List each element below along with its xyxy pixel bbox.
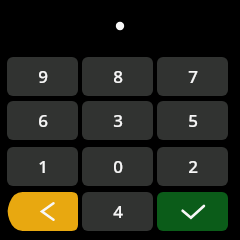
staticText: 5 <box>188 109 198 132</box>
button[interactable]: 5 <box>157 101 228 140</box>
button[interactable]: 3 <box>82 101 153 140</box>
button[interactable]: 6 <box>7 101 78 140</box>
button[interactable]: 1 <box>7 147 78 186</box>
staticText: 0 <box>113 155 123 178</box>
staticText: 9 <box>38 65 48 88</box>
button[interactable]: 2 <box>157 147 228 186</box>
staticText: 6 <box>38 109 48 132</box>
button[interactable]: Confirm <box>157 192 228 231</box>
button[interactable]: 7 <box>157 57 228 96</box>
button[interactable]: 8 <box>82 57 153 96</box>
staticText: 3 <box>113 109 123 132</box>
staticText: 8 <box>113 65 123 88</box>
staticText: 7 <box>188 65 198 88</box>
staticText: 1 <box>38 155 48 178</box>
button[interactable]: Back <box>7 192 78 231</box>
staticText: 4 <box>113 200 123 223</box>
button[interactable]: 4 <box>82 192 153 231</box>
button[interactable]: 0 <box>82 147 153 186</box>
staticText: 2 <box>188 155 198 178</box>
button[interactable]: 9 <box>7 57 78 96</box>
